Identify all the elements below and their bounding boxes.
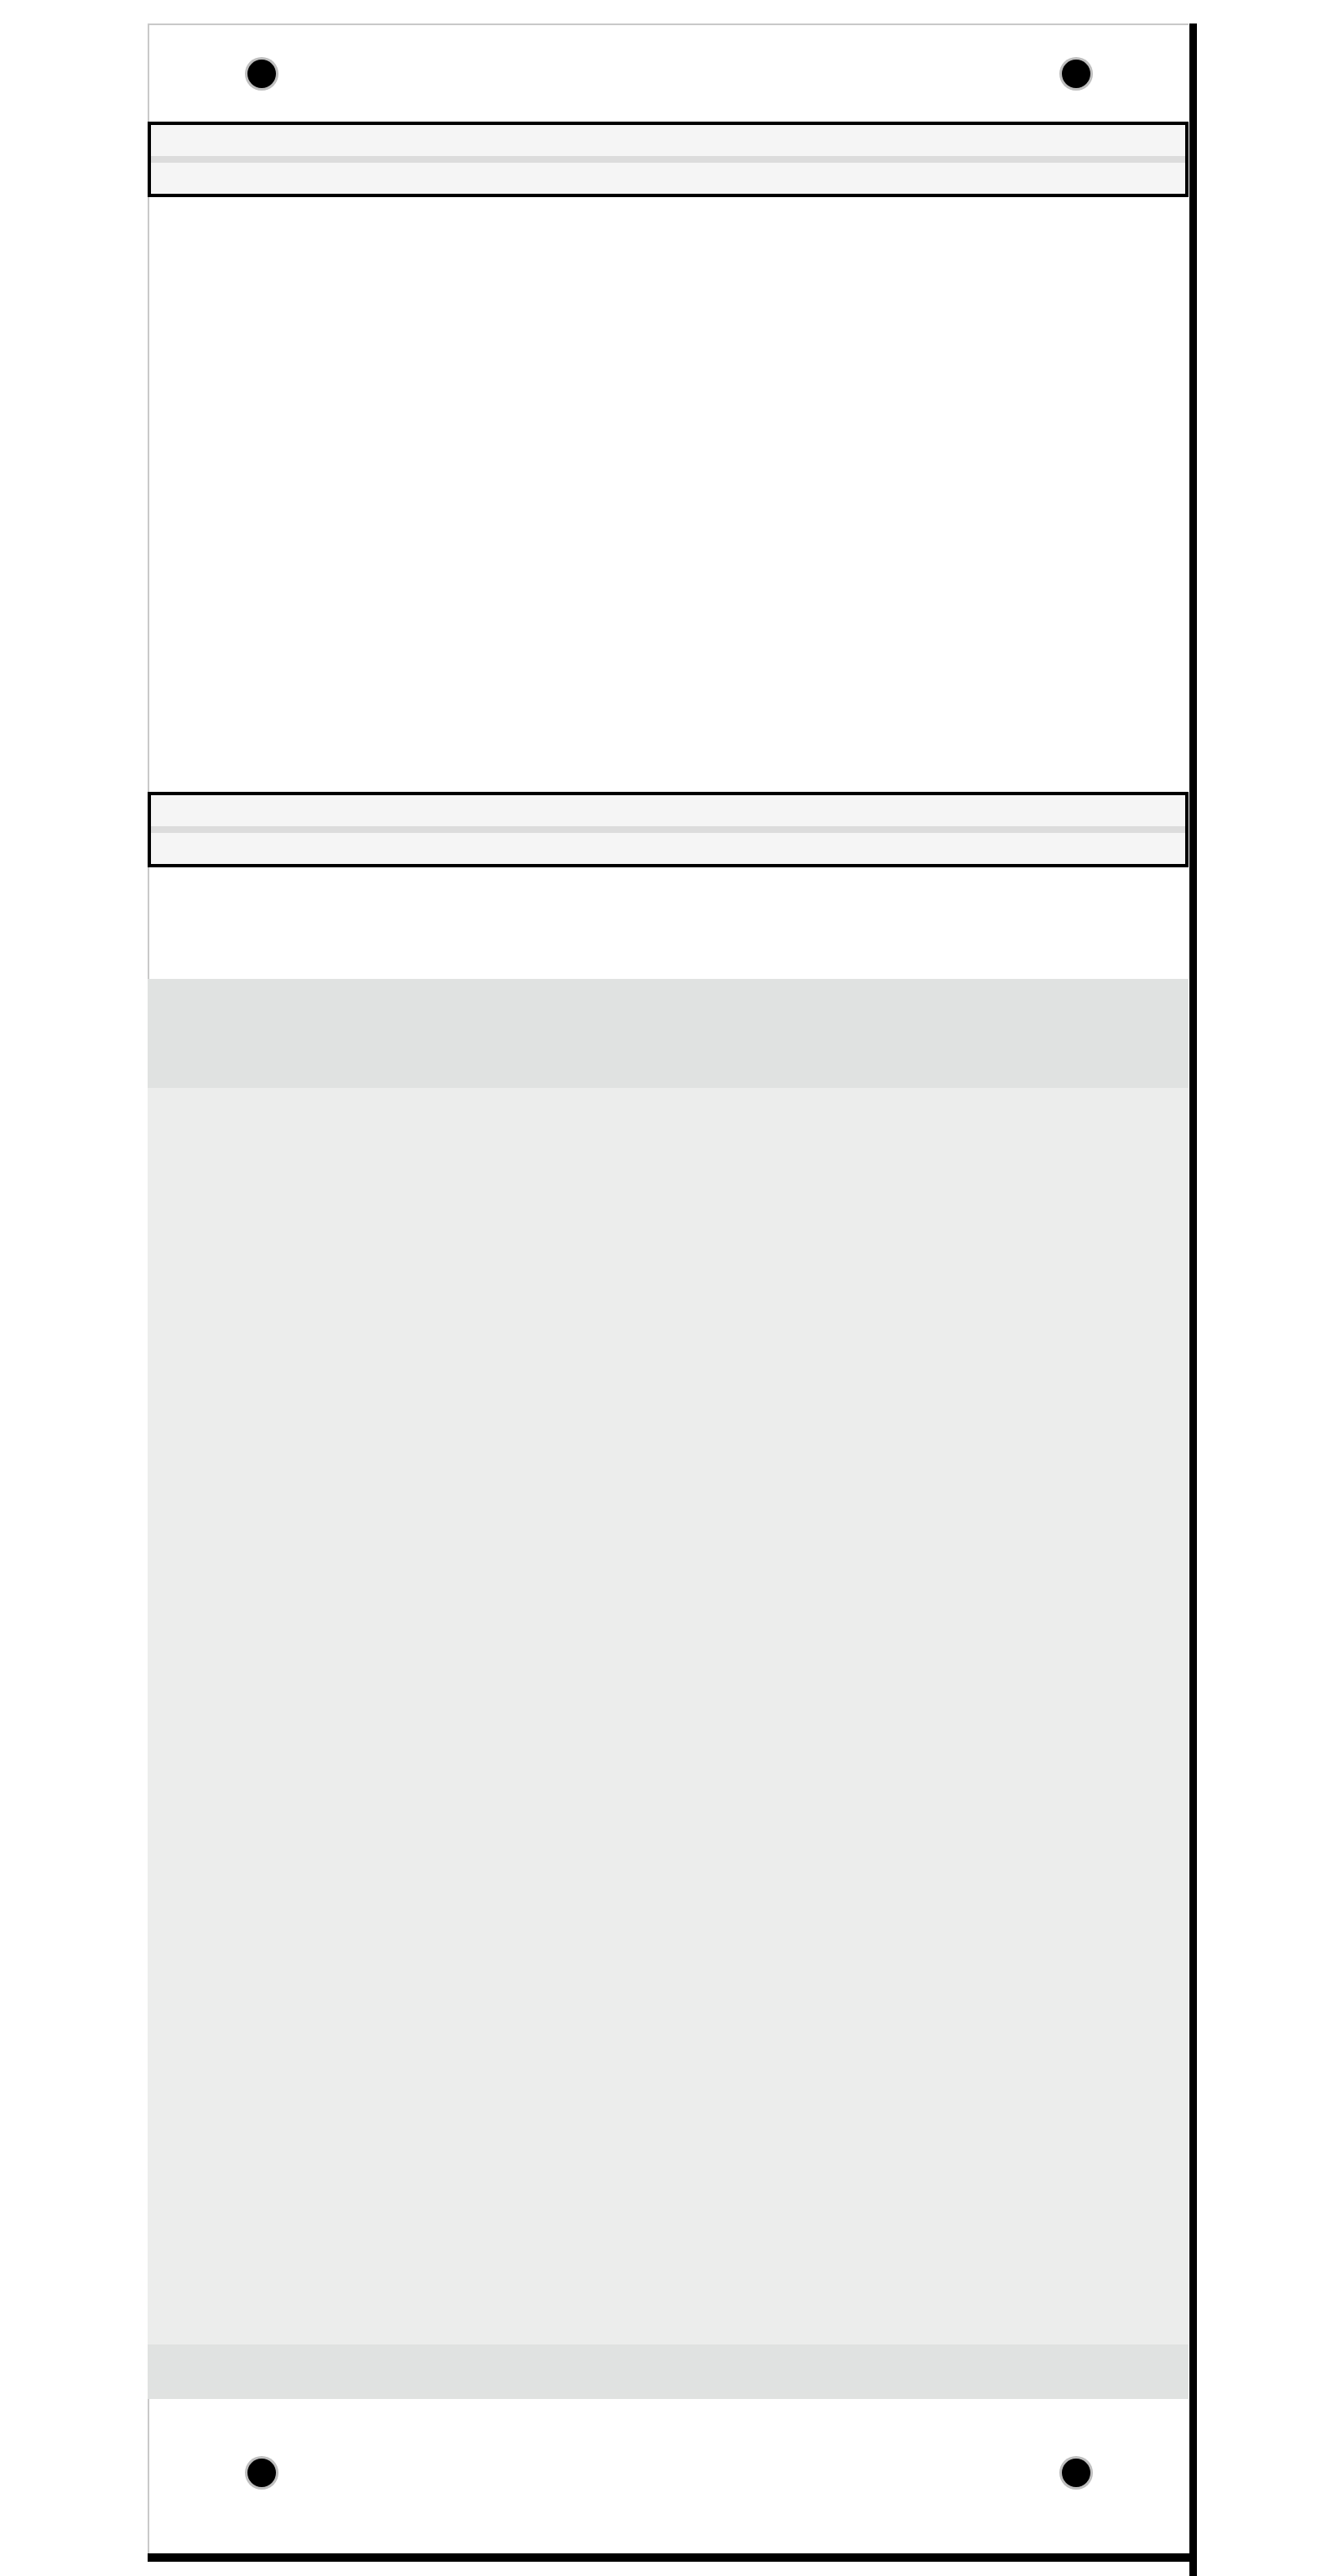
button[interactable]: Bottom left marker (245, 2456, 278, 2490)
button[interactable]: Top right marker (1059, 57, 1093, 91)
button[interactable] (148, 792, 1189, 867)
button[interactable] (148, 122, 1189, 197)
button[interactable]: Bottom right marker (1059, 2456, 1093, 2490)
button[interactable]: Top left marker (245, 57, 278, 91)
